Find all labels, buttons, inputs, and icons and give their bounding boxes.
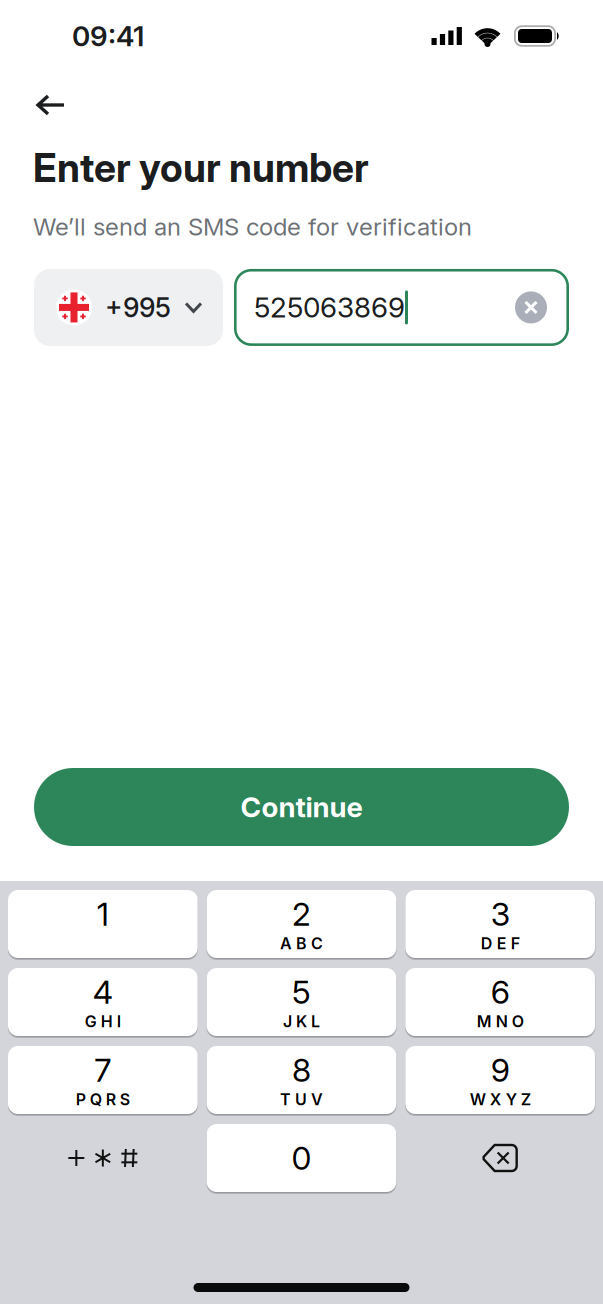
- button[interactable]: 4: [8, 968, 198, 1036]
- staticText: 7: [94, 1051, 111, 1089]
- staticText: G H I: [85, 1012, 121, 1031]
- button[interactable]: 7: [8, 1046, 198, 1114]
- button[interactable]: Back: [37, 95, 64, 115]
- button[interactable]: 5: [207, 968, 396, 1036]
- staticText: Continue: [240, 790, 362, 823]
- button[interactable]: More symbols: [8, 1124, 198, 1192]
- staticText: We’ll send an SMS code for verification: [33, 213, 472, 241]
- staticText: +995: [105, 292, 171, 323]
- button[interactable]: Continue: [34, 768, 569, 846]
- staticText: J K L: [283, 1012, 320, 1031]
- button[interactable]: 1: [8, 890, 198, 958]
- staticText: 9: [491, 1051, 510, 1089]
- staticText: 525063869: [254, 291, 405, 324]
- button[interactable]: Clear: [515, 291, 547, 323]
- staticText: 8: [292, 1051, 311, 1089]
- staticText: 4: [93, 973, 113, 1011]
- button[interactable]: 9: [405, 1046, 595, 1114]
- button[interactable]: Delete: [405, 1124, 595, 1192]
- staticText: D E F: [481, 934, 520, 953]
- staticText: 0: [291, 1139, 311, 1177]
- staticText: A B C: [280, 934, 323, 953]
- staticText: W X Y Z: [470, 1090, 531, 1109]
- staticText: 2: [292, 895, 311, 933]
- staticText: T U V: [280, 1090, 323, 1109]
- button[interactable]: 8: [207, 1046, 396, 1114]
- staticText: M N O: [477, 1012, 524, 1031]
- staticText: Enter your number: [33, 145, 369, 191]
- button[interactable]: 0: [207, 1124, 396, 1192]
- button[interactable]: 3: [405, 890, 595, 958]
- staticText: P Q R S: [76, 1090, 130, 1109]
- staticText: 1: [97, 895, 109, 933]
- button[interactable]: Country code +995: [34, 269, 223, 346]
- staticText: 09:41: [72, 19, 144, 52]
- staticText: 6: [491, 973, 510, 1011]
- button[interactable]: 6: [405, 968, 595, 1036]
- staticText: 5: [292, 973, 311, 1011]
- staticText: 3: [491, 895, 510, 933]
- button[interactable]: 2: [207, 890, 396, 958]
